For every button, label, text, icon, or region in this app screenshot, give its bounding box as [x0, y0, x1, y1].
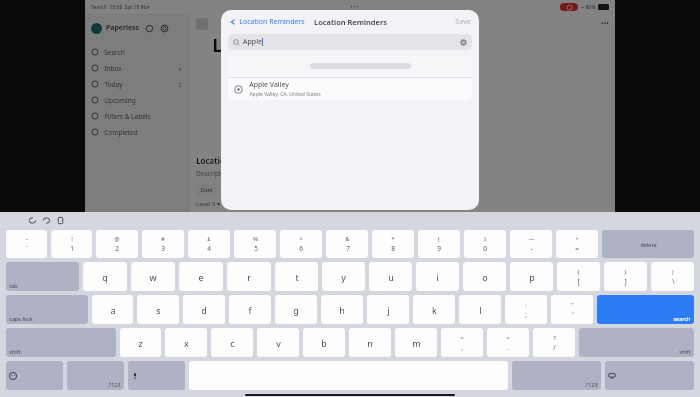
button[interactable]: %	[234, 230, 276, 258]
button[interactable]: Paste	[56, 216, 65, 225]
button[interactable]: Date	[196, 184, 217, 195]
button[interactable]: l	[459, 295, 501, 324]
button[interactable]: }	[604, 262, 647, 291]
button[interactable]: Search	[91, 44, 190, 60]
button[interactable]: *	[372, 230, 414, 258]
button[interactable]: d	[183, 295, 225, 324]
button[interactable]: j	[367, 295, 409, 324]
button[interactable]: z	[120, 328, 161, 357]
staticText: *	[391, 235, 395, 243]
button[interactable]: Dictate	[128, 361, 185, 390]
button[interactable]: p	[510, 262, 553, 291]
button[interactable]: Completed	[91, 124, 190, 140]
button[interactable]: Clear text	[460, 39, 467, 46]
button[interactable]: &	[326, 230, 368, 258]
button[interactable]: c	[211, 328, 253, 357]
button[interactable]: search	[597, 295, 694, 324]
staticText: 2	[115, 244, 119, 253]
button[interactable]: v	[257, 328, 299, 357]
button[interactable]: Inbox	[91, 60, 190, 76]
staticText: 8	[391, 244, 395, 253]
button[interactable]: delete	[602, 230, 694, 258]
button[interactable]: {	[557, 262, 600, 291]
button[interactable]: Hide keyboard	[605, 361, 694, 390]
button[interactable]: !	[51, 230, 92, 258]
button[interactable]: ^	[280, 230, 322, 258]
button[interactable]: Save	[455, 17, 471, 27]
button[interactable]: Redo	[42, 216, 51, 225]
button[interactable]: Location Reminders	[229, 17, 305, 27]
button[interactable]	[228, 55, 472, 77]
button[interactable]: Upcoming	[91, 92, 190, 108]
button[interactable]: k	[413, 295, 455, 324]
button[interactable]: Apple	[228, 34, 472, 50]
button[interactable]: w	[131, 262, 175, 291]
button[interactable]: s	[137, 295, 179, 324]
button[interactable]: Emoji	[6, 361, 63, 390]
button[interactable]: t	[275, 262, 318, 291]
button[interactable]: ~	[6, 230, 47, 258]
button[interactable]: "	[551, 295, 593, 324]
button[interactable]: Undo	[28, 216, 37, 225]
staticText: o	[482, 271, 488, 283]
staticText: #	[161, 235, 165, 243]
button[interactable]: Apple Valley	[228, 78, 472, 100]
button[interactable]: h	[321, 295, 363, 324]
button[interactable]: r	[227, 262, 271, 291]
button[interactable]: u	[369, 262, 412, 291]
staticText: 3	[161, 244, 165, 253]
button[interactable]: :	[505, 295, 547, 324]
staticText: l	[479, 304, 482, 316]
button[interactable]: #	[142, 230, 184, 258]
button[interactable]: •••	[601, 19, 609, 29]
button[interactable]: o	[463, 262, 506, 291]
staticText: @	[114, 235, 120, 243]
button[interactable]: shift	[6, 328, 116, 357]
button[interactable]: )	[464, 230, 506, 258]
button[interactable]: .?123	[512, 361, 601, 390]
button[interactable]: g	[275, 295, 317, 324]
button[interactable]: caps lock	[6, 295, 88, 324]
button[interactable]: Today	[91, 76, 190, 92]
button[interactable]: —	[510, 230, 552, 258]
button[interactable]: ?	[533, 328, 575, 357]
button[interactable]: i	[416, 262, 459, 291]
button[interactable]: <	[441, 328, 483, 357]
button[interactable]: Filters & Labels	[91, 108, 190, 124]
staticText: g	[293, 304, 299, 316]
button[interactable]: n	[349, 328, 391, 357]
staticText: t	[295, 271, 299, 283]
staticText: m	[412, 337, 421, 349]
button[interactable]: >	[487, 328, 529, 357]
button[interactable]: q	[83, 262, 127, 291]
staticText: %	[253, 235, 258, 243]
button[interactable]: shift	[579, 328, 694, 357]
button[interactable]: a	[92, 295, 133, 324]
button[interactable]: tab	[6, 262, 79, 291]
button[interactable]: f	[229, 295, 271, 324]
button[interactable]: b	[303, 328, 345, 357]
staticText: z	[138, 337, 143, 349]
button[interactable]: .?123	[67, 361, 124, 390]
staticText: p	[529, 271, 535, 283]
button[interactable]: y	[322, 262, 365, 291]
button[interactable]: m	[395, 328, 437, 357]
staticText: i	[436, 271, 439, 283]
button[interactable]: x	[165, 328, 207, 357]
button[interactable]: (	[418, 230, 460, 258]
staticText: ~	[25, 235, 29, 243]
button[interactable]: +	[556, 230, 598, 258]
staticText: )	[484, 235, 486, 243]
staticText: -	[530, 244, 533, 253]
button[interactable]: £	[188, 230, 230, 258]
button[interactable]: |	[651, 262, 694, 291]
button[interactable]: e	[179, 262, 223, 291]
button[interactable]: @	[96, 230, 138, 258]
